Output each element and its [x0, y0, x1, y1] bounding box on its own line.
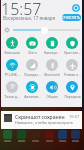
staticText: Скриншот сохранен [15, 114, 65, 121]
staticText: Калькул... [44, 50, 60, 55]
button[interactable]: Передача [62, 81, 82, 99]
button[interactable]: Вспышка [2, 37, 22, 55]
button[interactable]: Крат.зап... [62, 37, 82, 55]
staticText: Режим п... [64, 72, 81, 77]
button[interactable]: App [71, 130, 80, 139]
button[interactable]: TP-LINK... [2, 59, 22, 77]
staticText: Фото [28, 50, 37, 55]
staticText: Нажмите, чтобы просмотреть [15, 120, 73, 125]
staticText: Крат.зап... [64, 50, 81, 55]
staticText: 15:57 [1, 0, 42, 20]
button[interactable]: Передач... [22, 59, 42, 77]
button[interactable]: Общие [42, 81, 62, 99]
button[interactable]: Калькул... [42, 37, 62, 55]
button[interactable]: Автопов... [22, 81, 42, 99]
staticText: Воскресенье, 17 января [3, 15, 56, 21]
staticText: 15:57 [69, 114, 80, 119]
button[interactable]: Settings [70, 2, 81, 13]
button[interactable]: App [45, 130, 54, 139]
staticText: Передача [64, 94, 81, 99]
staticText: Передач... [24, 72, 41, 77]
button[interactable]: Скриншот сохранен [1, 111, 82, 129]
staticText: Автопов... [24, 94, 41, 99]
staticText: ОЧИСТИТЬ [62, 15, 81, 20]
button[interactable]: Фото [22, 37, 42, 55]
button[interactable]: App [3, 130, 12, 139]
button[interactable]: Bluetooth [42, 59, 62, 77]
button[interactable]: Точка д... [2, 81, 22, 99]
staticText: Общие [46, 94, 58, 99]
staticText: Bluetooth [44, 72, 60, 77]
staticText: Вспышка [4, 50, 20, 55]
button[interactable]: App [17, 130, 26, 139]
staticText: Точка д... [4, 94, 20, 99]
staticText: TP-LINK... [4, 72, 20, 77]
button[interactable]: Режим п... [62, 59, 82, 77]
button[interactable]: App [58, 130, 67, 139]
button[interactable]: ОЧИСТИТЬ [62, 14, 81, 21]
